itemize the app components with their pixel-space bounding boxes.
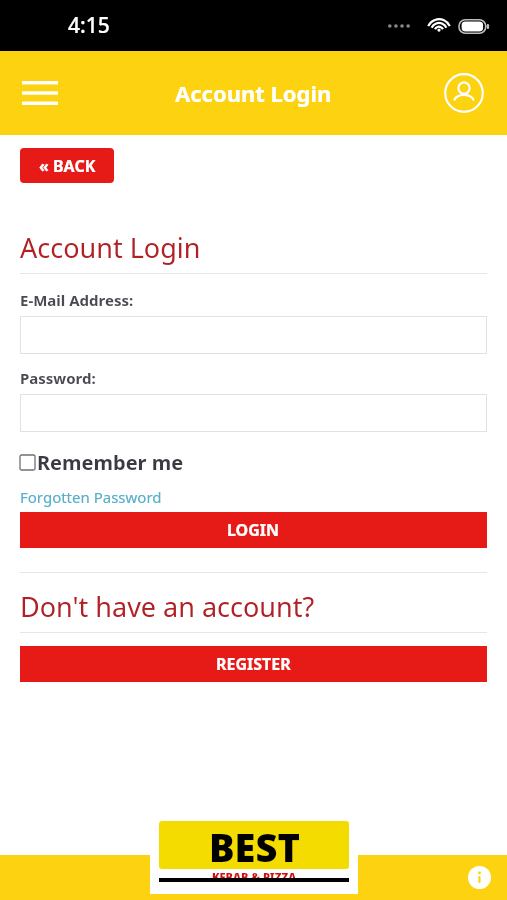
- staticText: Forgotten Password: [20, 487, 162, 507]
- button[interactable]: « BACK: [20, 148, 114, 183]
- button[interactable]: [20, 394, 487, 432]
- staticText: 4:15: [68, 11, 110, 40]
- staticText: LOGIN: [227, 519, 280, 541]
- staticText: REGISTER: [216, 653, 291, 675]
- button[interactable]: Forgotten Password: [20, 487, 162, 507]
- button[interactable]: Information: [467, 865, 491, 889]
- button[interactable]: [20, 316, 487, 354]
- staticText: Account Login: [20, 229, 201, 266]
- button[interactable]: REGISTER: [20, 646, 487, 682]
- staticText: Account Login: [175, 78, 332, 108]
- staticText: KEBAB & PIZZA: [212, 869, 297, 882]
- staticText: Don't have an account?: [20, 588, 315, 625]
- button[interactable]: Best Kebab and Pizza logo: [150, 816, 358, 894]
- staticText: E-Mail Address:: [20, 290, 134, 310]
- button[interactable]: Account: [441, 70, 487, 116]
- staticText: BEST: [209, 821, 300, 869]
- staticText: Password:: [20, 368, 96, 388]
- button[interactable]: Remember me: [20, 449, 184, 476]
- staticText: « BACK: [39, 155, 96, 177]
- button[interactable]: Menu: [14, 71, 66, 115]
- staticText: Remember me: [37, 449, 184, 476]
- button[interactable]: LOGIN: [20, 512, 487, 548]
